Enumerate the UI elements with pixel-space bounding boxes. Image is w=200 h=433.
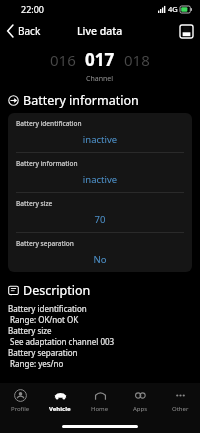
staticText: Battery identification — [8, 303, 87, 314]
button[interactable]: Apps — [120, 385, 160, 417]
staticText: Live data — [77, 24, 123, 38]
staticText: Battery size — [16, 199, 53, 208]
button[interactable]: Battery size — [8, 193, 192, 232]
button[interactable]: Back — [0, 20, 49, 42]
button[interactable]: Profile — [0, 385, 40, 417]
staticText: No — [16, 253, 184, 266]
staticText: Range: OK/not OK — [8, 314, 79, 325]
staticText: Home — [91, 405, 109, 413]
staticText: Profile — [11, 405, 30, 413]
staticText: Other — [172, 405, 189, 413]
staticText: Battery separation — [16, 239, 74, 248]
button[interactable]: Battery information — [8, 153, 192, 192]
staticText: inactive — [16, 133, 184, 146]
staticText: Apps — [133, 405, 148, 413]
staticText: Battery information — [23, 92, 139, 109]
staticText: 22:00 — [21, 3, 45, 15]
staticText: Description — [23, 282, 91, 299]
staticText: 70 — [16, 213, 184, 226]
button[interactable]: Home — [80, 385, 120, 417]
button[interactable]: Measurement — [179, 24, 194, 39]
staticText: 4G — [168, 4, 178, 14]
button[interactable]: Battery separation — [8, 233, 192, 272]
button[interactable]: Battery identification — [8, 113, 192, 152]
staticText: Vehicle — [49, 405, 71, 413]
staticText: Battery separation — [8, 347, 78, 358]
staticText: Battery information — [16, 159, 78, 168]
staticText: inactive — [16, 173, 184, 186]
staticText: 016 — [50, 50, 76, 70]
staticText: Battery identification — [16, 119, 82, 128]
staticText: Battery size — [8, 325, 52, 336]
staticText: 017 — [85, 48, 115, 71]
staticText: Back — [18, 24, 41, 38]
staticText: 018 — [124, 50, 150, 70]
button[interactable]: Other — [160, 385, 200, 417]
staticText: Range: yes/no — [8, 358, 64, 369]
staticText: Channel — [86, 74, 114, 84]
button[interactable]: Vehicle — [40, 385, 80, 417]
staticText: See adaptation channel 003 — [8, 336, 115, 347]
